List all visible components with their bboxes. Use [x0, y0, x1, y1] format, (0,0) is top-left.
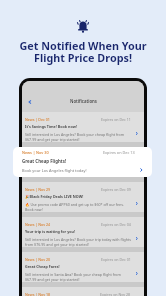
staticText: 🎉Black Friday Deals LIVE NOW!: [25, 194, 84, 199]
button[interactable]: News | Nov 24: [22, 217, 144, 247]
button[interactable]: News | Dec 01: [22, 112, 144, 142]
button[interactable]: News | Nov 29: [22, 182, 144, 212]
staticText: News | Nov 29: [25, 187, 51, 192]
staticText: 🔥 Use promo code APP60 and get up to $60…: [25, 202, 132, 212]
staticText: Still interested in Los Angeles? Book yo…: [25, 237, 132, 247]
staticText: Still interested in Los Angeles? Book yo…: [25, 132, 132, 142]
button[interactable]: News | Nov 18: [22, 287, 144, 296]
staticText: Expires on Nov 28: [100, 292, 131, 296]
staticText: Expires on Dec 04: [101, 222, 131, 227]
staticText: News | Nov 18: [25, 292, 51, 296]
staticText: Expires on Dec 01: [101, 257, 131, 262]
staticText: Great Cheap Fares!: [25, 264, 60, 269]
staticText: News | Nov 24: [25, 222, 51, 227]
staticText: Expires on Dec 13: [103, 150, 135, 155]
button[interactable]: News | Nov 30: [13, 147, 152, 177]
button[interactable]: Back: [26, 98, 34, 106]
staticText: Great Cheap Flights!: [22, 158, 67, 164]
staticText: Still interested in Santa Ana? Book your…: [25, 272, 132, 282]
staticText: News | Dec 01: [25, 117, 50, 122]
staticText: Get Notified When Your Flight Price Drop…: [0, 38, 166, 65]
staticText: Book your Los Angeles flight today!: [22, 168, 138, 173]
staticText: It's Savings Time! Book now!: [25, 124, 77, 129]
staticText: News | Nov 20: [25, 257, 51, 262]
staticText: Expires on Dec 09: [101, 187, 131, 192]
staticText: Notifications: [70, 98, 97, 104]
button[interactable]: News | Nov 20: [22, 252, 144, 282]
staticText: Your trip is waiting for you!: [25, 229, 76, 234]
staticText: Expires on Dec 11: [101, 117, 131, 122]
staticText: News | Nov 30: [22, 150, 49, 155]
